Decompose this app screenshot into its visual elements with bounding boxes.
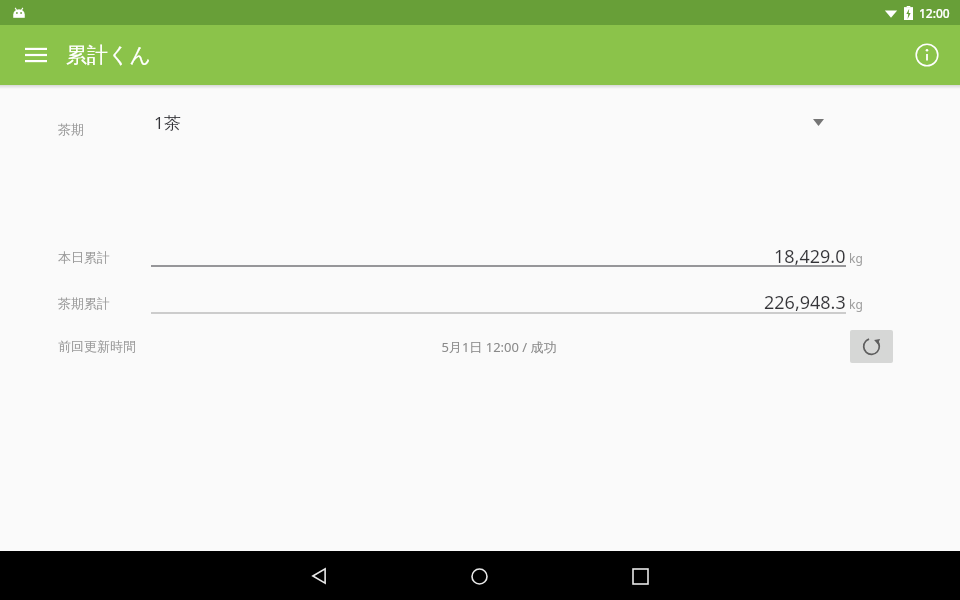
button[interactable]: Home <box>455 552 503 600</box>
staticText: 226,948.3 <box>764 290 846 314</box>
staticText: 5月1日 12:00 / 成功 <box>380 338 618 356</box>
staticText: 18,429.0 <box>774 244 846 268</box>
button[interactable]: Information <box>903 31 951 79</box>
button[interactable]: Recent apps <box>616 552 664 600</box>
button[interactable]: Refresh <box>850 330 893 363</box>
staticText: 12:00 <box>919 5 950 21</box>
staticText: 本日累計 <box>58 249 110 265</box>
staticText: kg <box>849 250 863 266</box>
staticText: 前回更新時間 <box>58 338 136 354</box>
button[interactable]: 1茶 <box>150 104 850 140</box>
button[interactable]: Menu <box>12 31 60 79</box>
staticText: 1茶 <box>154 111 181 134</box>
staticText: 茶期累計 <box>58 295 110 311</box>
staticText: 茶期 <box>58 121 84 137</box>
staticText: kg <box>849 296 863 312</box>
staticText: 累計くん <box>66 42 151 68</box>
button[interactable]: Back <box>295 552 343 600</box>
